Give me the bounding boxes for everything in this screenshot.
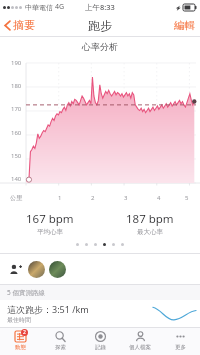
staticText: 上午8:33 bbox=[85, 2, 115, 12]
staticText: 心率分析 bbox=[82, 41, 118, 52]
staticText: 個人檔案 bbox=[129, 344, 151, 351]
button[interactable]: Friend avatar bbox=[49, 261, 66, 278]
staticText: 150 bbox=[11, 152, 22, 160]
staticText: 180 bbox=[11, 82, 22, 90]
staticText: 2 bbox=[23, 329, 26, 336]
button[interactable]: 編輯 bbox=[169, 16, 200, 35]
staticText: 最佳時間 bbox=[7, 316, 31, 324]
staticText: 190 bbox=[11, 59, 22, 67]
staticText: 這次跑步：3:51 /km bbox=[7, 303, 89, 315]
button[interactable]: Friend avatar bbox=[28, 261, 45, 278]
staticText: 動態 bbox=[15, 344, 26, 351]
staticText: 170 bbox=[11, 105, 22, 113]
staticText: 140 bbox=[11, 175, 22, 183]
staticText: 3 bbox=[124, 194, 128, 202]
staticText: 中華電信 bbox=[25, 3, 53, 12]
button[interactable]: 更多 bbox=[160, 328, 200, 355]
staticText: 探索 bbox=[55, 344, 66, 351]
staticText: 公里 bbox=[10, 194, 22, 202]
button[interactable]: 這次跑步：3:51 /km bbox=[0, 300, 200, 326]
staticText: 167 bpm bbox=[26, 211, 74, 227]
button[interactable]: Add friend bbox=[7, 261, 23, 277]
staticText: 最大心率 bbox=[137, 228, 163, 236]
staticText: 4G bbox=[55, 2, 65, 12]
staticText: 2 bbox=[91, 194, 95, 202]
staticText: 1 bbox=[58, 194, 62, 202]
button[interactable]: 2 bbox=[0, 328, 40, 355]
staticText: 5 個實測路線 bbox=[7, 288, 45, 297]
staticText: 160 bbox=[11, 129, 22, 137]
staticText: 平均心率 bbox=[37, 228, 63, 236]
staticText: 更多 bbox=[175, 344, 186, 351]
staticText: 187 bpm bbox=[126, 211, 174, 227]
staticText: 跑步 bbox=[88, 18, 112, 33]
button[interactable]: 個人檔案 bbox=[120, 328, 160, 355]
staticText: 摘要 bbox=[13, 18, 35, 32]
staticText: 4 bbox=[157, 194, 161, 202]
staticText: 5 bbox=[185, 194, 189, 202]
button[interactable]: 探索 bbox=[40, 328, 80, 355]
button[interactable]: 摘要 bbox=[0, 15, 41, 35]
button[interactable]: 記錄 bbox=[80, 328, 120, 355]
staticText: 記錄 bbox=[95, 344, 106, 351]
